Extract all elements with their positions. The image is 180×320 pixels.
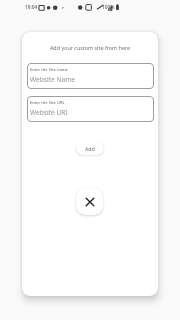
staticText: Enter the Site name	[30, 67, 68, 73]
staticText: Add	[85, 145, 95, 152]
staticText: Enter the Site URL	[30, 100, 65, 106]
staticText: 100%	[102, 4, 115, 11]
staticText: 19:04	[25, 4, 38, 11]
button[interactable]: Close	[76, 188, 103, 215]
staticText: Add your custom site from here	[22, 44, 158, 51]
button[interactable]: Add	[76, 142, 104, 155]
staticText: Website URI	[30, 108, 68, 117]
staticText: Website Name	[30, 75, 76, 84]
